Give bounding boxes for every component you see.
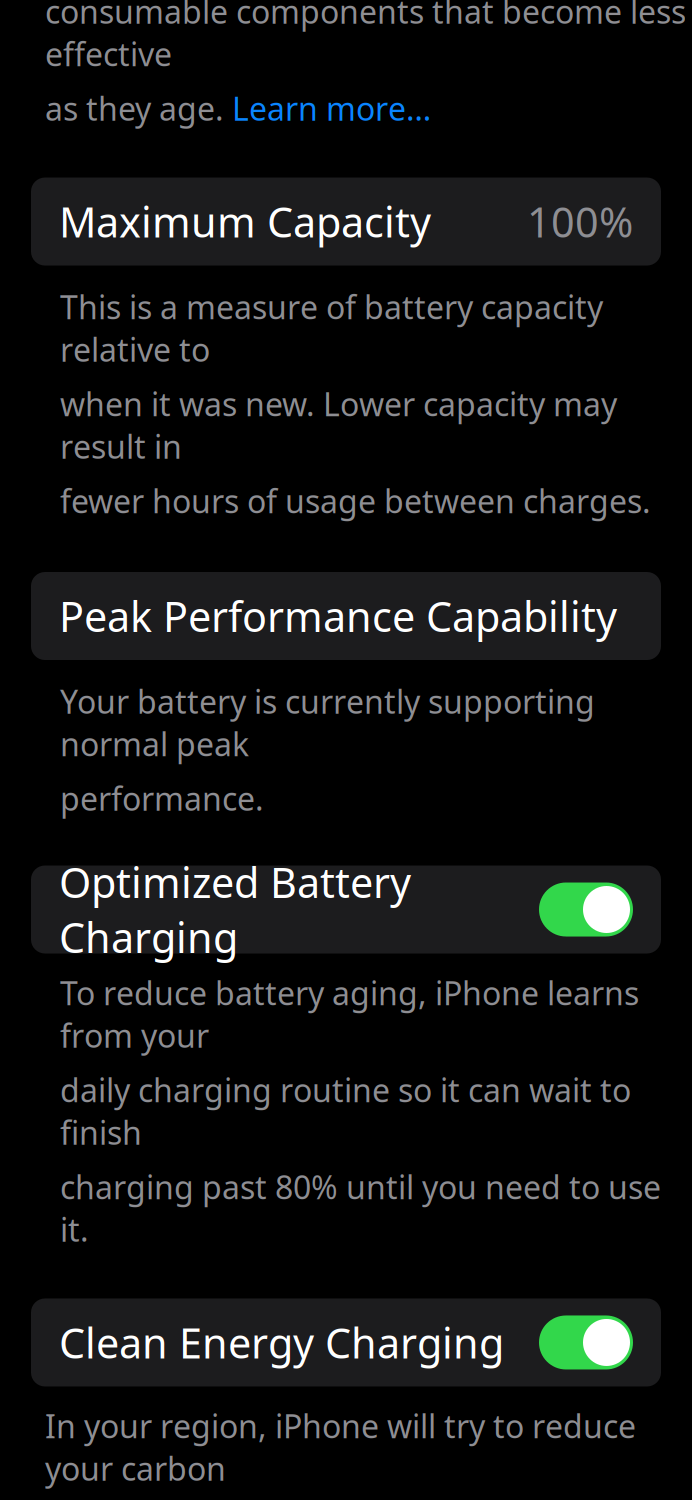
staticText: This is a measure of battery capacity re… — [60, 285, 603, 370]
staticText: charging past 80% until you need to use … — [60, 1165, 661, 1250]
staticText: performance. — [60, 777, 264, 819]
staticText: Learn more… — [232, 87, 431, 129]
staticText: In your region, iPhone will try to reduc… — [45, 1404, 636, 1489]
button[interactable]: Learn more… — [232, 87, 431, 129]
staticText: Maximum Capacity — [59, 194, 431, 249]
staticText: when it was new. Lower capacity may resu… — [60, 382, 617, 467]
staticText: 100% — [527, 194, 633, 249]
staticText: daily charging routine so it can wait to… — [60, 1068, 631, 1153]
staticText: fewer hours of usage between charges. — [60, 479, 651, 522]
staticText: To reduce battery aging, iPhone learns f… — [60, 971, 639, 1056]
staticText: Optimized Battery Charging — [59, 855, 411, 964]
button[interactable]: Clean Energy Charging — [31, 1298, 661, 1386]
staticText: consumable components that become less e… — [45, 0, 686, 75]
button[interactable]: Maximum Capacity — [31, 177, 661, 265]
staticText: Peak Performance Capability — [59, 589, 617, 643]
button[interactable]: Peak Performance Capability — [31, 572, 661, 660]
staticText: as they age. — [45, 87, 232, 129]
staticText: Your battery is currently supporting nor… — [60, 680, 595, 765]
staticText: Clean Energy Charging — [59, 1315, 504, 1370]
button[interactable]: Optimized Battery Charging — [31, 865, 661, 953]
